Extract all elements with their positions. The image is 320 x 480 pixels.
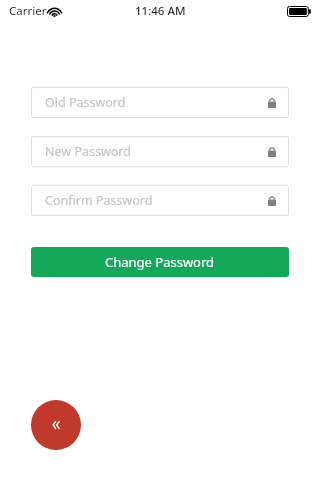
staticText: New Password bbox=[45, 143, 131, 160]
staticText: Change Password bbox=[105, 253, 215, 271]
staticText: 11:46 AM bbox=[135, 3, 186, 19]
button[interactable]: Change Password bbox=[31, 247, 289, 277]
button[interactable]: Old Password bbox=[31, 87, 289, 118]
staticText: Carrier bbox=[9, 3, 47, 19]
staticText: Confirm Password bbox=[45, 192, 153, 209]
button[interactable]: Back bbox=[31, 400, 81, 450]
staticText: Old Password bbox=[45, 94, 126, 111]
button[interactable]: New Password bbox=[31, 136, 289, 167]
button[interactable]: Confirm Password bbox=[31, 185, 289, 216]
